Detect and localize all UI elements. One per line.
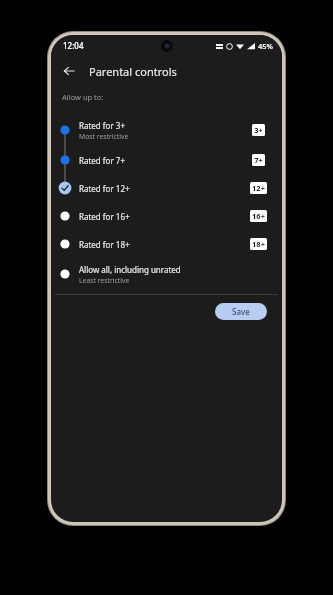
- staticText: Allow up to:: [62, 92, 104, 102]
- staticText: Allow all, including unrated: [79, 264, 181, 275]
- staticText: Least restrictive: [79, 276, 130, 285]
- staticText: 7+: [254, 155, 263, 165]
- staticText: 3+: [254, 125, 263, 135]
- staticText: 12+: [252, 183, 265, 193]
- staticText: Rated for 3+: [79, 120, 125, 131]
- button[interactable]: Rated for 18+: [51, 230, 282, 258]
- staticText: Most restrictive: [79, 132, 129, 141]
- button[interactable]: Rated for 7+: [51, 146, 282, 174]
- staticText: Rated for 7+: [79, 155, 125, 166]
- staticText: Parental controls: [89, 64, 177, 79]
- button[interactable]: Rated for 12+: [51, 174, 282, 202]
- staticText: 18+: [252, 239, 265, 249]
- staticText: Rated for 16+: [79, 211, 130, 222]
- button[interactable]: Allow all, including unrated: [51, 258, 282, 290]
- button[interactable]: Rated for 16+: [51, 202, 282, 230]
- staticText: Rated for 18+: [79, 239, 130, 250]
- staticText: 16+: [252, 211, 265, 221]
- button[interactable]: Save: [215, 303, 267, 320]
- button[interactable]: Rated for 3+: [51, 114, 282, 146]
- button[interactable]: Back: [57, 59, 81, 83]
- staticText: 12:04: [63, 40, 84, 51]
- staticText: Save: [232, 306, 250, 317]
- staticText: 45%: [258, 41, 273, 51]
- staticText: Rated for 12+: [79, 183, 130, 194]
